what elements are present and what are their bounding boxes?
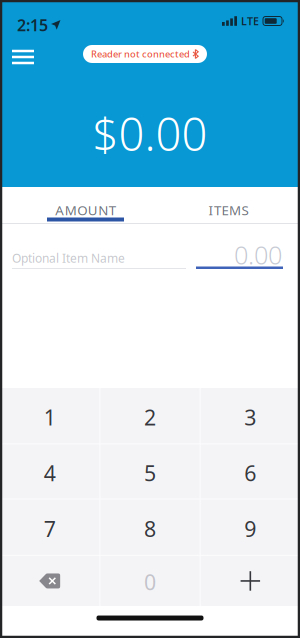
staticText: 2	[144, 403, 156, 431]
button[interactable]: Reader not connected	[83, 45, 207, 63]
staticText: Reader not connected	[91, 48, 190, 60]
staticText: 4	[44, 459, 56, 487]
button[interactable]: 1	[0, 388, 99, 443]
staticText: 6	[244, 459, 256, 487]
staticText: 5	[144, 459, 156, 487]
button[interactable]: Menu	[0, 41, 34, 67]
staticText: 9	[244, 514, 256, 543]
staticText: Optional Item Name	[12, 250, 125, 266]
staticText: $0.00	[92, 103, 207, 164]
staticText: 3	[244, 403, 256, 431]
button[interactable]: 8	[100, 499, 200, 555]
button[interactable]: 3	[201, 388, 300, 443]
staticText: 0.00	[234, 238, 282, 271]
staticText: 2:15	[17, 14, 48, 36]
button[interactable]: 0.00	[196, 233, 283, 269]
button[interactable]: AMOUNT	[14, 187, 157, 223]
button[interactable]: Add item	[201, 556, 300, 606]
button[interactable]: 0	[100, 556, 200, 606]
staticText: 1	[44, 403, 56, 431]
staticText: 8	[144, 514, 156, 543]
staticText: 7	[44, 514, 56, 543]
staticText: LTE	[241, 14, 259, 28]
staticText: AMOUNT	[55, 201, 116, 219]
button[interactable]: 2	[100, 388, 200, 443]
button[interactable]: 6	[201, 444, 300, 498]
button[interactable]: 4	[0, 444, 99, 498]
button[interactable]: 5	[100, 444, 200, 498]
button[interactable]: 9	[201, 499, 300, 555]
button[interactable]: ITEMS	[157, 187, 300, 223]
staticText: 0	[144, 568, 156, 596]
staticText: ITEMS	[208, 201, 248, 219]
button[interactable]: Optional Item Name	[12, 250, 186, 269]
button[interactable]: Delete	[0, 556, 99, 606]
button[interactable]: 7	[0, 499, 99, 555]
